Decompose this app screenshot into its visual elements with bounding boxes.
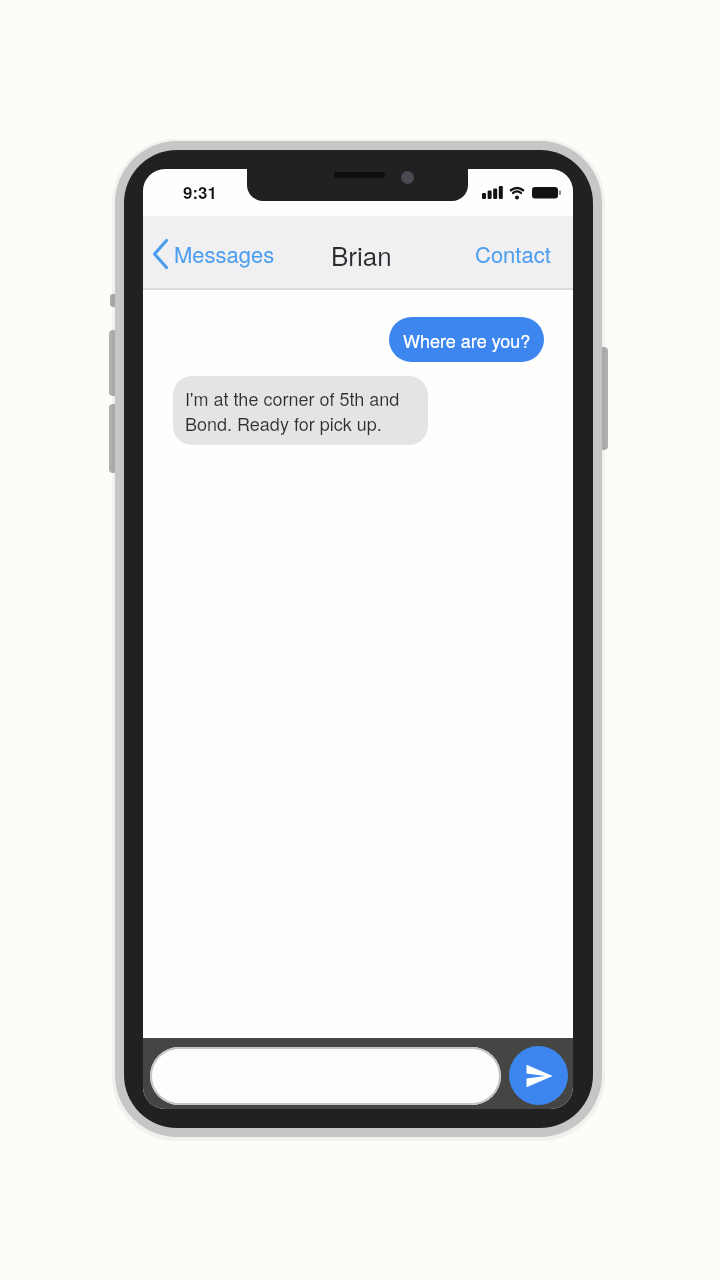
staticText: Where are you?: [403, 327, 531, 353]
staticText: Messages: [174, 238, 275, 270]
button[interactable]: Messages: [147, 219, 297, 289]
staticText: 9:31: [183, 180, 218, 204]
button[interactable]: [150, 1047, 501, 1105]
staticText: I'm at the corner of 5th and Bond. Ready…: [185, 385, 400, 436]
staticText: Brian: [331, 236, 392, 273]
button[interactable]: [509, 1046, 568, 1105]
staticText: Contact: [475, 238, 551, 270]
button[interactable]: Contact: [453, 219, 573, 289]
